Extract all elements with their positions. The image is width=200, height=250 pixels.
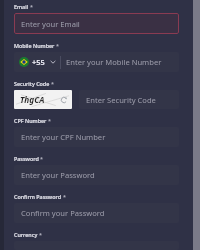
button[interactable]: Enter your Password	[14, 165, 179, 185]
staticText: Confirm your Password	[21, 208, 105, 218]
staticText: Confirm Password	[14, 193, 62, 200]
staticText: Email	[14, 3, 29, 10]
button[interactable]: Enter your Mobile Number	[61, 52, 179, 72]
button[interactable]: Enter your Email	[14, 13, 179, 34]
staticText: Mobile Number	[14, 42, 55, 49]
staticText: Enter your CPF Number	[21, 132, 106, 142]
staticText: *	[51, 80, 54, 87]
staticText: Enter Security Code	[86, 95, 156, 105]
staticText: Password	[14, 155, 39, 162]
staticText: Enter your Password	[21, 170, 95, 180]
staticText: Security Code	[14, 80, 50, 87]
staticText: *	[56, 42, 59, 49]
button[interactable]: Refresh security code	[14, 90, 72, 109]
staticText: +55	[32, 57, 45, 67]
staticText: ThgCA	[20, 94, 45, 105]
button[interactable]: Enter Security Code	[79, 90, 179, 109]
staticText: CPF Number	[14, 117, 47, 124]
staticText: *	[40, 155, 43, 162]
staticText: *	[63, 193, 66, 200]
staticText: Enter your Email	[21, 19, 80, 29]
staticText: Currency	[14, 231, 38, 238]
staticText: *	[39, 231, 42, 238]
button[interactable]: +55	[14, 52, 60, 72]
staticText: *	[30, 3, 33, 10]
staticText: *	[48, 117, 51, 124]
button[interactable]: Confirm your Password	[14, 203, 179, 223]
staticText: Enter your Mobile Number	[66, 57, 162, 67]
button[interactable]: Enter your CPF Number	[14, 127, 179, 147]
